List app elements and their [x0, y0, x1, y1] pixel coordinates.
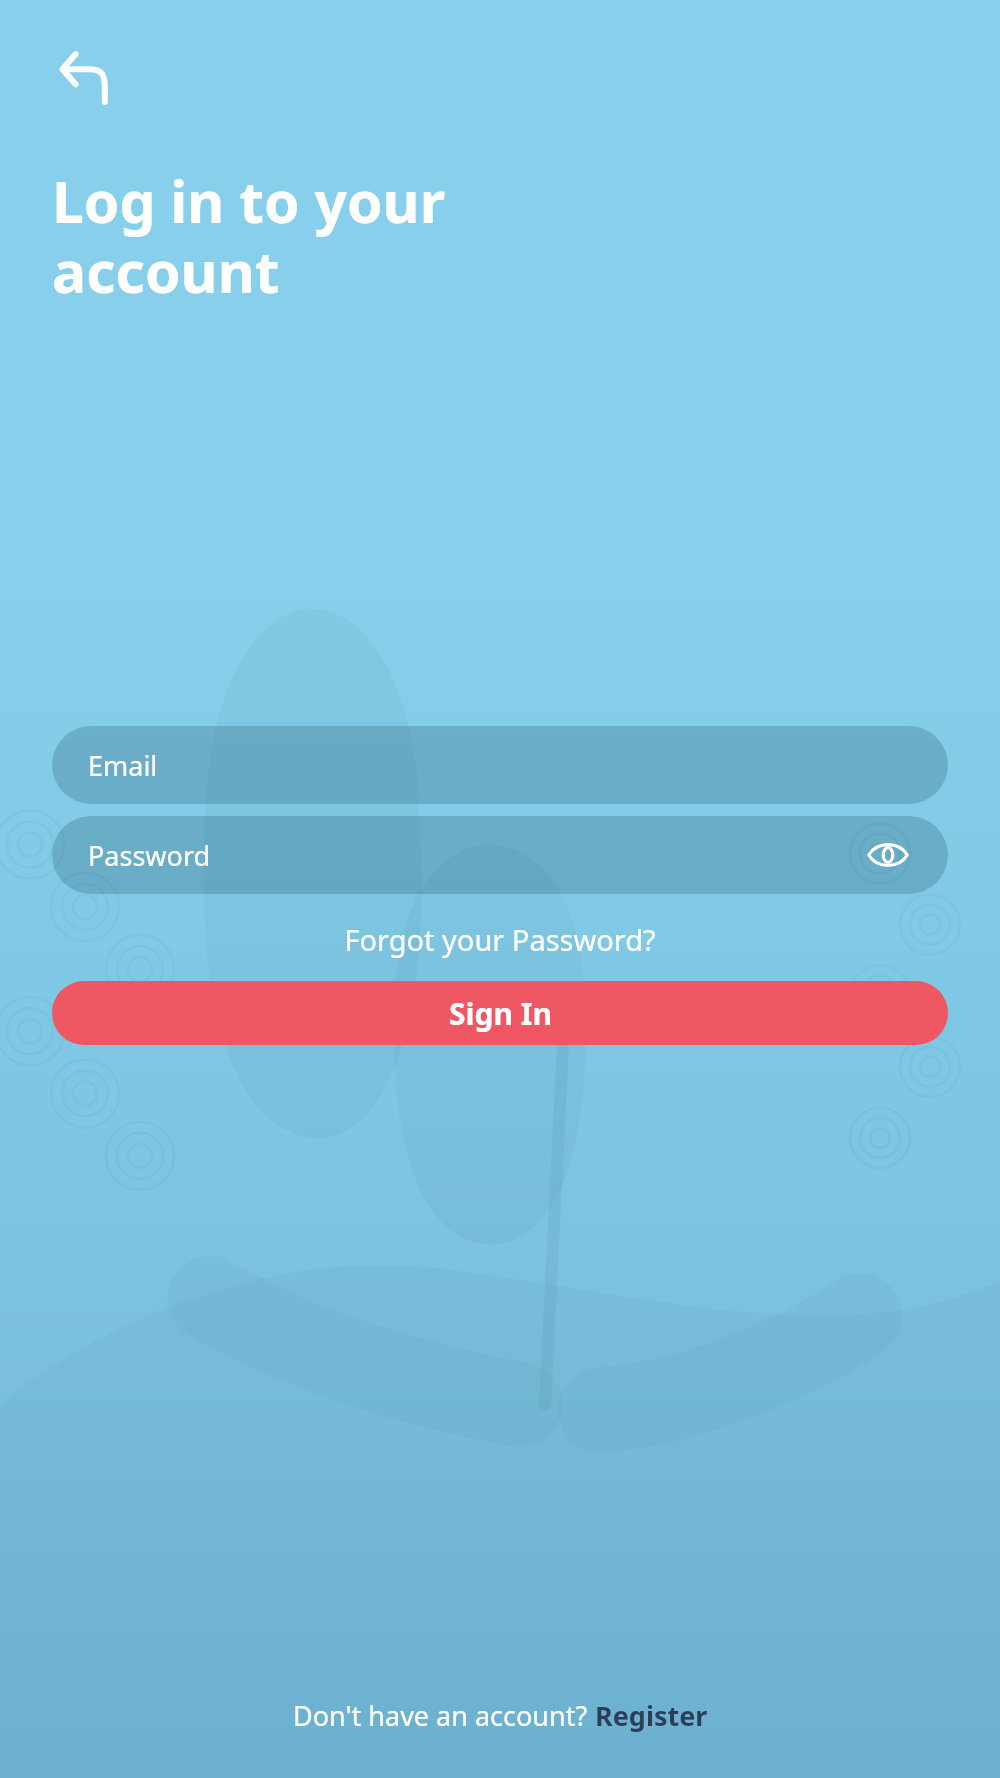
- button[interactable]: Don't have an account?: [0, 1689, 1000, 1742]
- button[interactable]: Back: [52, 46, 116, 110]
- staticText: Forgot your Password?: [344, 920, 656, 959]
- staticText: Log in to your account: [52, 162, 446, 310]
- staticText: Sign In: [449, 993, 552, 1034]
- staticText: Register: [595, 1697, 708, 1734]
- staticText: Password: [88, 837, 211, 874]
- button[interactable]: Forgot your Password?: [334, 916, 666, 963]
- staticText: Email: [88, 747, 158, 784]
- button[interactable]: Password: [52, 816, 948, 894]
- staticText: Don't have an account?: [293, 1697, 595, 1734]
- button[interactable]: Show password: [864, 831, 912, 879]
- button[interactable]: Email: [52, 726, 948, 804]
- button[interactable]: Sign In: [52, 981, 948, 1045]
